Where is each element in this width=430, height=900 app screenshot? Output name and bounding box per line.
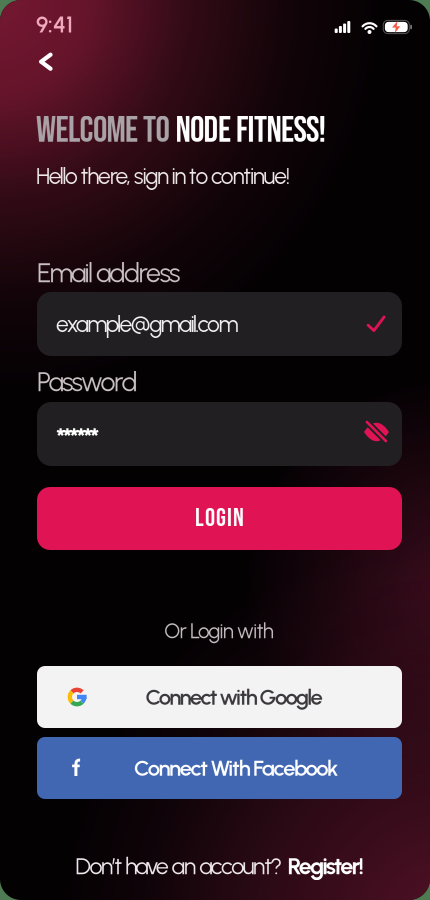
staticText: LOGIN	[195, 503, 244, 534]
staticText: Hello there, sign in to continue!	[36, 162, 290, 190]
staticText: Or Login with	[164, 619, 274, 643]
staticText: WELCOME TO	[36, 109, 169, 153]
staticText: Email address	[37, 257, 180, 289]
button[interactable]: LOGIN	[37, 487, 402, 550]
button[interactable]: Password field	[37, 402, 402, 466]
button[interactable]: Back	[26, 44, 66, 80]
staticText: Register!	[287, 852, 364, 880]
staticText: 9:41	[36, 11, 73, 38]
button[interactable]: Connect with Google	[37, 666, 402, 728]
button[interactable]: Email address field	[37, 292, 402, 356]
staticText: Password	[37, 366, 137, 398]
staticText: NODE FITNESS!	[175, 109, 326, 153]
button[interactable]: Connect With Facebook	[37, 737, 402, 799]
staticText: Don’t have an account?	[75, 852, 282, 880]
staticText: Connect with Google	[145, 684, 323, 710]
staticText: example@gmail.com	[56, 310, 238, 338]
button[interactable]: Don’t have an account?	[75, 852, 364, 880]
staticText: Connect With Facebook	[134, 755, 338, 781]
staticText: ******	[56, 422, 100, 454]
